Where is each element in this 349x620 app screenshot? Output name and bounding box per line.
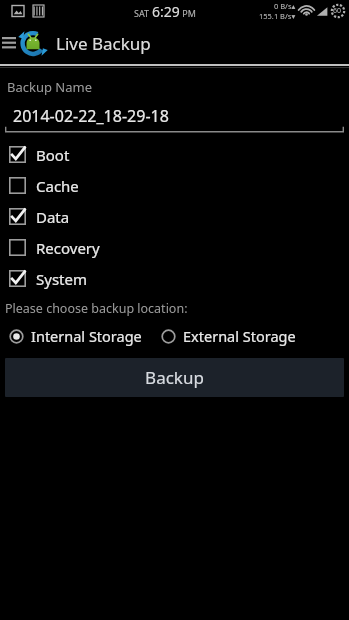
staticText: Boot [36,145,70,165]
staticText: Data [36,207,70,227]
staticText: 60 [333,6,342,16]
button[interactable]: System [0,263,349,294]
button[interactable]: Data [0,201,349,232]
staticText: Cache [36,176,79,196]
button[interactable]: External Storage [152,323,296,349]
button[interactable]: Open navigation menu [0,22,18,64]
staticText: Live Backup [56,32,151,55]
staticText: External Storage [183,326,296,346]
staticText: 2014-02-22_18-29-18 [13,105,169,127]
staticText: 6:29 [152,2,180,21]
staticText: SAT [134,7,152,19]
button[interactable]: Cache [0,170,349,201]
button[interactable]: Internal Storage [0,323,142,349]
button[interactable]: 2014-02-22_18-29-18 [5,104,344,133]
staticText: Recovery [36,238,100,258]
staticText: System [36,269,87,289]
staticText: 155.1 B/s▾ [259,11,296,21]
button[interactable]: Boot [0,139,349,170]
button[interactable]: Recovery [0,232,349,263]
staticText: Backup [145,366,204,389]
staticText: Internal Storage [31,326,142,346]
staticText: 0 B/s▴ [274,1,296,11]
staticText: Backup Name [7,78,92,96]
button[interactable]: Backup [5,358,344,397]
staticText: Please choose backup location: [5,300,188,317]
staticText: PM [180,7,196,19]
